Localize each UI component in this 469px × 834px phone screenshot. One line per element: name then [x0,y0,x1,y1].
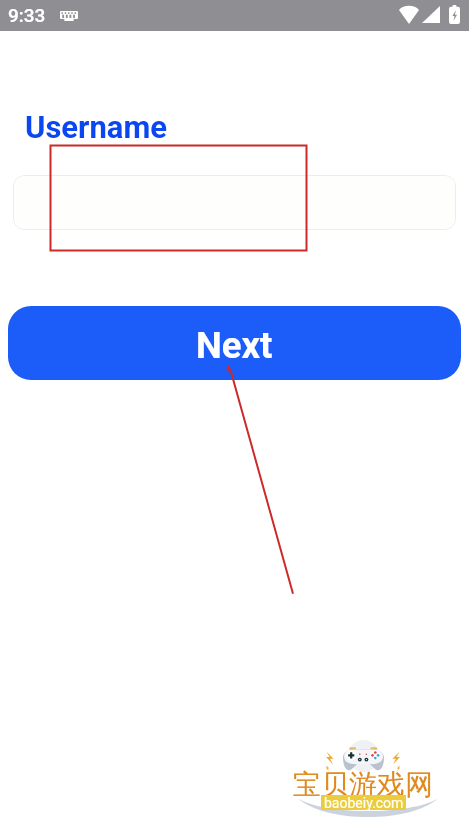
staticText: Next [196,324,273,367]
staticText: Username [25,109,168,145]
button[interactable]: Username input field [13,175,456,230]
other: Mobile signal [422,6,440,23]
staticText: 宝贝游戏网 [293,767,433,802]
other: Wi-Fi signal [399,6,419,24]
staticText: baobeiy.com [324,795,404,810]
other: Battery charging [449,5,460,24]
button[interactable]: Next [8,306,461,380]
staticText: 9:33 [8,4,46,26]
